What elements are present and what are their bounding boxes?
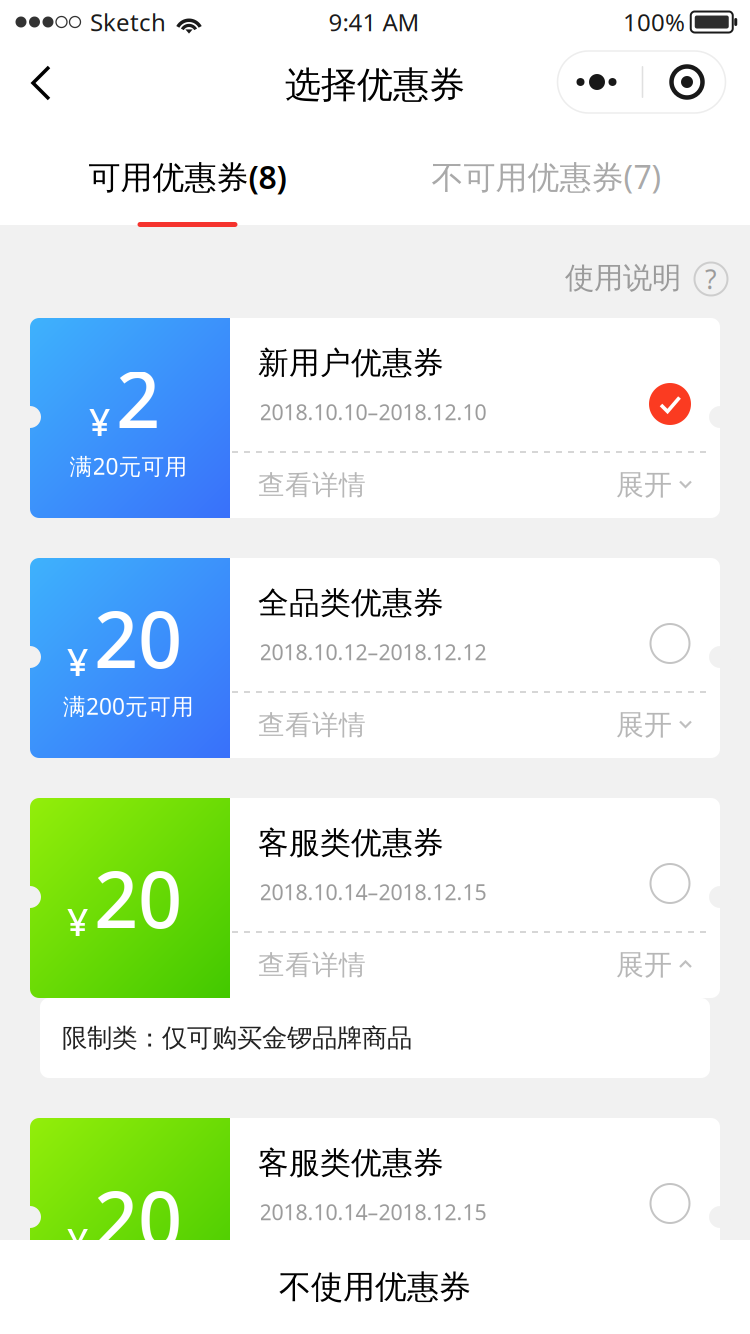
staticText: Sketch bbox=[90, 6, 166, 38]
button[interactable]: 可用优惠券(8) bbox=[0, 125, 374, 224]
staticText: 选择优惠券 bbox=[285, 63, 465, 107]
staticText: 满20元可用 bbox=[69, 451, 187, 481]
staticText: 查看详情 bbox=[258, 949, 366, 981]
staticText: 查看详情 bbox=[258, 709, 366, 741]
staticText: 100% bbox=[623, 6, 685, 38]
staticText: 客服类优惠券 bbox=[258, 1144, 444, 1182]
staticText: 2018.10.14–2018.12.15 bbox=[259, 1198, 486, 1226]
staticText: 20 bbox=[94, 587, 182, 689]
staticText: 9:41 AM bbox=[328, 6, 419, 38]
staticText: 展开 bbox=[616, 708, 672, 742]
staticText: ¥ bbox=[67, 637, 88, 686]
staticText: ¥ bbox=[67, 897, 88, 946]
staticText: 新用户优惠券 bbox=[258, 344, 444, 382]
staticText: ¥ bbox=[89, 397, 110, 446]
staticText: 限制类：仅可购买金锣品牌商品 bbox=[62, 1022, 412, 1053]
staticText: ? bbox=[705, 261, 717, 297]
staticText: 使用说明 bbox=[565, 260, 681, 296]
staticText: 全品类优惠券 bbox=[258, 584, 444, 622]
staticText: 展开 bbox=[616, 468, 672, 502]
staticText: 不可用优惠券(7) bbox=[431, 155, 661, 198]
staticText: 2018.10.12–2018.12.12 bbox=[259, 638, 486, 666]
button[interactable]: 使用说明 bbox=[566, 251, 746, 305]
staticText: ¥ bbox=[67, 1217, 88, 1266]
staticText: 满200元可用 bbox=[63, 691, 194, 721]
button[interactable]: ¥ bbox=[30, 558, 720, 758]
button[interactable]: ¥ bbox=[30, 798, 720, 998]
staticText: 2018.10.14–2018.12.15 bbox=[259, 878, 486, 906]
staticText: 2018.10.10–2018.12.10 bbox=[259, 398, 486, 426]
staticText: 查看详情 bbox=[258, 1269, 366, 1301]
staticText: 查看详情 bbox=[258, 469, 366, 501]
button[interactable]: 不可用优惠券(7) bbox=[374, 125, 749, 224]
button[interactable]: ¥ bbox=[30, 318, 720, 518]
button[interactable]: ¥ bbox=[30, 1118, 720, 1318]
staticText: 2 bbox=[116, 347, 160, 449]
staticText: 不使用优惠券 bbox=[279, 1267, 471, 1307]
staticText: 客服类优惠券 bbox=[258, 824, 444, 862]
staticText: 展开 bbox=[616, 948, 672, 982]
staticText: 20 bbox=[94, 847, 182, 949]
button[interactable]: 不使用优惠券 bbox=[0, 1240, 750, 1334]
staticText: 可用优惠券(8) bbox=[88, 155, 286, 198]
button[interactable]: More options bbox=[557, 51, 725, 113]
staticText: 20 bbox=[94, 1167, 182, 1269]
button[interactable]: Back bbox=[0, 40, 76, 126]
